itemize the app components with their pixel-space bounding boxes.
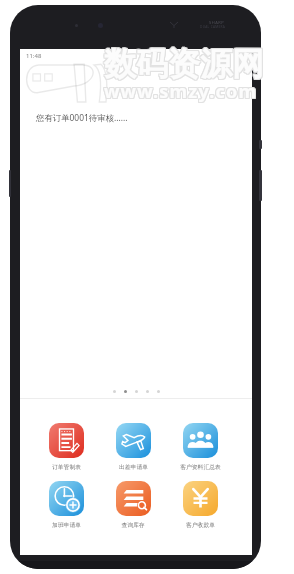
button[interactable]: 查询库存 [107, 481, 159, 528]
staticText: www.smzy.com [104, 80, 258, 105]
staticText: 加班申请单 [52, 521, 81, 528]
staticText: 您有订单0001待审核...... [36, 112, 128, 123]
staticText: 客户收款单 [186, 521, 215, 528]
staticText: www.smzy.com [103, 78, 257, 103]
staticText: www.smzy.com [105, 78, 259, 103]
staticText: www.smzy.com [105, 80, 259, 105]
staticText: 客户资料汇总表 [180, 463, 221, 470]
staticText: 出差申请单 [119, 463, 148, 470]
staticText: www.smzy.com [103, 79, 257, 104]
button[interactable]: 客户资料汇总表 [174, 423, 226, 470]
staticText: 数码资源网 [104, 44, 264, 84]
button[interactable]: 订单管制表 [40, 423, 92, 470]
staticText: www.smzy.com [104, 78, 258, 103]
staticText: www.smzy.com [105, 79, 259, 104]
staticText: SHARP [209, 20, 225, 25]
staticText: 数码资源网 [105, 43, 265, 83]
staticText: 数码资源网 [103, 45, 263, 85]
staticText: DUAL CAMERA [200, 25, 226, 29]
staticText: 数码资源网 [104, 43, 264, 83]
staticText: 数码资源网 [105, 45, 265, 85]
button[interactable]: 加班申请单 [40, 481, 92, 528]
staticText: 数码资源网 [104, 45, 264, 85]
staticText: www.smzy.com [104, 79, 258, 104]
button[interactable]: 出差申请单 [107, 423, 159, 470]
staticText: www.smzy.com [103, 80, 257, 105]
button[interactable]: 客户收款单 [174, 481, 226, 528]
staticText: 查询库存 [121, 521, 145, 528]
staticText: 数码资源网 [105, 44, 265, 84]
staticText: 数码资源网 [103, 43, 263, 83]
staticText: 11:48 [26, 52, 42, 60]
staticText: 数码资源网 [103, 44, 263, 84]
staticText: 订单管制表 [52, 463, 81, 470]
